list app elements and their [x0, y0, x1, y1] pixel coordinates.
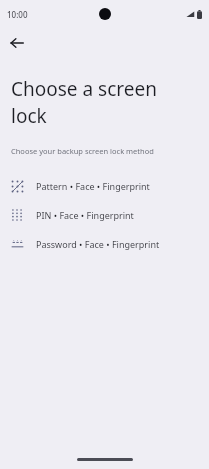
button[interactable]: Back	[4, 30, 30, 56]
staticText: Pattern • Face • Fingerprint	[36, 180, 150, 192]
staticText: 10:00	[7, 9, 28, 20]
staticText: Choose your backup screen lock method	[11, 146, 154, 156]
button[interactable]: PIN • Face • Fingerprint	[0, 200, 209, 229]
button[interactable]: Password • Face • Fingerprint	[0, 229, 209, 258]
staticText: PIN • Face • Fingerprint	[36, 209, 134, 221]
button[interactable]: Pattern • Face • Fingerprint	[0, 171, 209, 200]
staticText: Choose a screen lock	[11, 76, 187, 129]
staticText: Password • Face • Fingerprint	[36, 238, 160, 250]
